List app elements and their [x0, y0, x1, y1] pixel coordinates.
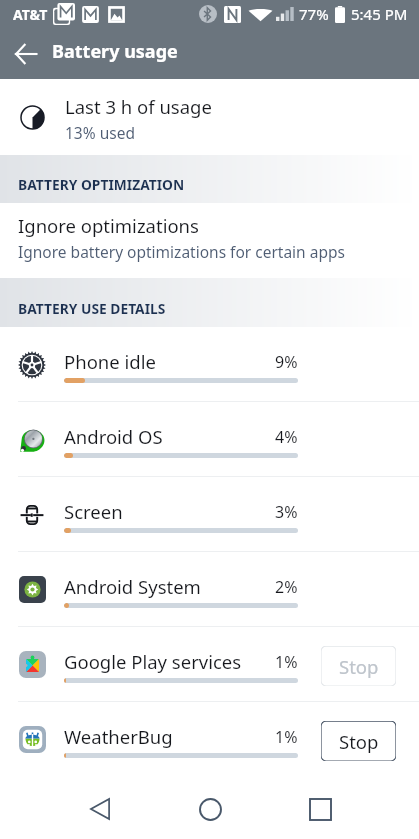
staticText: Stop	[339, 729, 379, 754]
button[interactable]: Android System	[0, 552, 419, 627]
staticText: 9%	[275, 351, 298, 373]
button[interactable]: Phone idle	[0, 327, 419, 402]
button[interactable]: Android OS	[0, 402, 419, 477]
button[interactable]: Screen	[0, 477, 419, 552]
button[interactable]: Stop	[321, 646, 396, 686]
staticText: 13% used	[65, 122, 135, 143]
button[interactable]: Back	[72, 781, 128, 837]
staticText: WeatherBug	[64, 724, 275, 749]
button[interactable]: Stop	[321, 721, 396, 761]
staticText: Android System	[64, 574, 275, 599]
button[interactable]: Google Play services	[0, 627, 419, 702]
staticText: Stop	[339, 654, 379, 679]
staticText: Ignore optimizations	[18, 213, 199, 238]
staticText: 3%	[275, 501, 298, 523]
staticText: Android OS	[64, 424, 275, 449]
staticText: AT&T	[13, 5, 48, 24]
staticText: BATTERY OPTIMIZATION	[18, 175, 185, 194]
button[interactable]: Home	[182, 781, 238, 837]
staticText: Last 3 h of usage	[65, 94, 212, 119]
staticText: Google Play services	[64, 649, 275, 674]
button[interactable]: WeatherBug	[0, 702, 419, 777]
button[interactable]: Recent apps	[292, 781, 348, 837]
staticText: Phone idle	[64, 349, 275, 374]
staticText: Screen	[64, 499, 275, 524]
staticText: Battery usage	[52, 39, 178, 64]
staticText: Ignore battery optimizations for certain…	[18, 241, 345, 262]
button[interactable]: Ignore optimizations	[0, 203, 419, 278]
staticText: 77%	[299, 4, 329, 24]
staticText: BATTERY USE DETAILS	[18, 299, 166, 318]
staticText: 1%	[275, 726, 298, 748]
staticText: 4%	[275, 426, 298, 448]
staticText: 2%	[275, 576, 298, 598]
button[interactable]: Back	[0, 28, 52, 79]
staticText: 1%	[275, 651, 298, 673]
staticText: 5:45 PM	[351, 4, 408, 24]
button[interactable]: Last 3 h of usage	[0, 79, 419, 155]
